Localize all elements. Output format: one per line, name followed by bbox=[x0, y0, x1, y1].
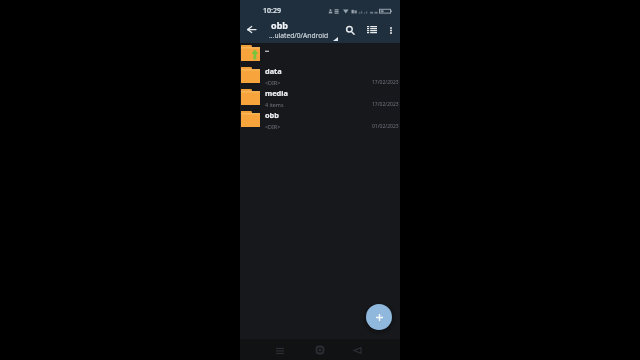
staticText: ...ulated/0/Android bbox=[269, 31, 329, 40]
button[interactable]: Search bbox=[341, 21, 359, 39]
button[interactable]: media bbox=[240, 87, 400, 109]
staticText: 10:29 bbox=[263, 6, 281, 16]
button[interactable]: Back bbox=[347, 340, 367, 360]
staticText: obb bbox=[271, 19, 289, 31]
button[interactable]: Navigate up bbox=[243, 21, 259, 37]
staticText: <DIR> bbox=[265, 79, 281, 86]
staticText: 17/02/2023 bbox=[372, 79, 399, 86]
staticText: <DIR> bbox=[265, 123, 281, 130]
staticText: 17/02/2023 bbox=[372, 101, 399, 108]
staticText: 01/02/2023 bbox=[372, 123, 399, 130]
staticText: obb bbox=[265, 110, 279, 120]
button[interactable]: More options bbox=[383, 22, 399, 38]
staticText: media bbox=[265, 88, 288, 98]
button[interactable]: Change view bbox=[363, 21, 381, 39]
button[interactable]: .. bbox=[240, 43, 400, 65]
button[interactable]: Recent apps bbox=[270, 340, 290, 360]
staticText: 4 items bbox=[265, 101, 284, 108]
staticText: .. bbox=[265, 44, 270, 54]
button[interactable]: Add bbox=[366, 304, 392, 330]
button[interactable]: Home bbox=[310, 340, 330, 360]
staticText: data bbox=[265, 66, 282, 76]
button[interactable]: data bbox=[240, 65, 400, 87]
button[interactable]: obb bbox=[240, 109, 400, 131]
